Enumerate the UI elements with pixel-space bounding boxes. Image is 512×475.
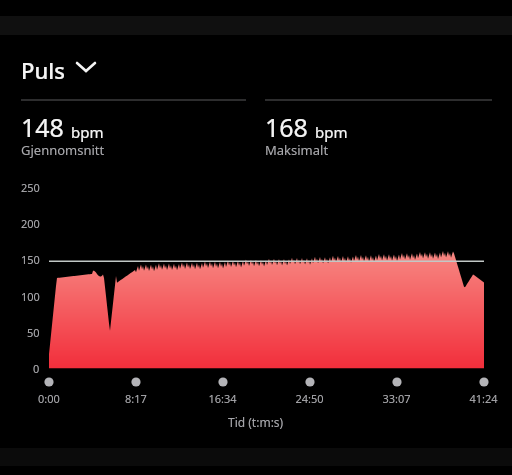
button[interactable]: Puls, velg måling	[14, 48, 110, 88]
